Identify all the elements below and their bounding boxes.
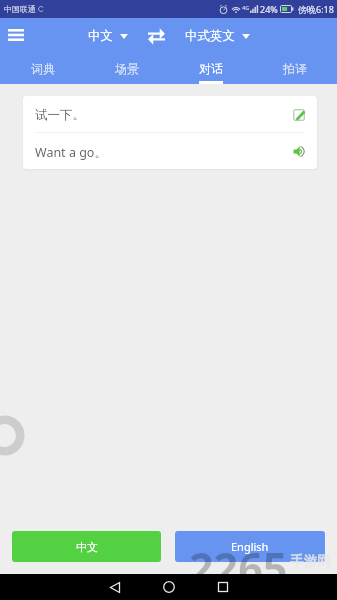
button[interactable]: 中式英文 [182,23,253,49]
button[interactable]: Menu [0,18,31,53]
button[interactable]: 词典 [0,53,85,84]
staticText: 24% [260,3,278,15]
button[interactable]: Edit [288,103,310,125]
staticText: 拍译 [283,61,307,76]
staticText: 中文 [88,28,113,44]
staticText: 2265 [189,538,288,574]
button[interactable]: Swap languages [144,23,168,49]
staticText: 傍晚6:18 [298,3,334,15]
button[interactable]: 对话 [169,53,253,84]
staticText: 词典 [31,61,55,76]
staticText: 中式英文 [185,28,235,44]
button[interactable]: 试一下。 [23,96,317,132]
button[interactable]: English [175,531,325,562]
staticText: 场景 [115,61,139,76]
staticText: 4G [242,4,250,11]
button[interactable]: 中文 [12,531,161,562]
button[interactable]: Want a go。 [23,133,317,169]
button[interactable]: 中文 [85,23,131,49]
button[interactable]: Recents [196,574,250,600]
staticText: 中文 [76,540,98,554]
staticText: 手游网 [290,553,331,570]
button[interactable]: Play audio [288,140,310,162]
staticText: 中国联通 [4,4,36,14]
button[interactable]: 场景 [85,53,169,84]
button[interactable]: Home [142,574,196,600]
staticText: Want a go。 [35,144,107,161]
staticText: 对话 [199,61,223,76]
staticText: English [231,539,269,554]
staticText: 试一下。 [35,107,85,123]
button[interactable]: 拍译 [253,53,337,84]
button[interactable]: Back [88,574,142,600]
